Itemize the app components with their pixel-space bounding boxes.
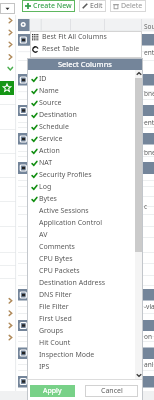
staticText: Bytes	[39, 194, 57, 204]
staticText: CPU Bytes	[39, 254, 73, 264]
button[interactable]: Source	[27, 97, 135, 109]
button[interactable]: Bytes	[27, 193, 135, 205]
button[interactable]: ID	[27, 73, 135, 85]
button[interactable]: Comments	[27, 241, 135, 253]
staticText: Apply	[43, 386, 62, 396]
staticText: Security Profiles	[39, 170, 92, 180]
button[interactable]: Edit	[79, 0, 106, 12]
button[interactable]: Action	[27, 145, 135, 157]
staticText: Edit	[90, 1, 103, 11]
staticText: Destination Address	[39, 278, 106, 288]
staticText: Cancel	[101, 386, 123, 396]
button[interactable]: DNS Filter	[27, 289, 135, 301]
staticText: Service	[39, 134, 63, 144]
staticText: Select Columns	[58, 59, 112, 69]
staticText: Groups	[39, 326, 64, 336]
other: Scroll down	[136, 372, 142, 378]
staticText: Source	[39, 98, 62, 108]
button[interactable]: Destination Address	[27, 277, 135, 289]
staticText: Active Sessions	[39, 206, 89, 216]
other: Scroll up	[136, 71, 142, 77]
staticText: bne	[144, 89, 154, 98]
button[interactable]: Service	[27, 133, 135, 145]
staticText: CPU Packets	[39, 266, 80, 276]
button[interactable]: Active Sessions	[27, 205, 135, 217]
button[interactable]: IPS	[27, 361, 135, 373]
button[interactable]: CPU Packets	[27, 265, 135, 277]
button[interactable]: Application Control	[27, 217, 135, 229]
staticText: Hit Count	[39, 338, 71, 348]
staticText: ent	[144, 48, 154, 57]
staticText: Name	[39, 86, 59, 96]
staticText: anl	[144, 360, 154, 369]
staticText: Create New	[33, 1, 72, 11]
button[interactable]: Log	[27, 181, 135, 193]
staticText: bne	[144, 148, 154, 157]
staticText: First Used	[39, 314, 72, 324]
button[interactable]: Apply	[30, 385, 75, 397]
button[interactable]: Schedule	[27, 121, 135, 133]
button[interactable]: File Filter	[27, 301, 135, 313]
staticText: Schedule	[39, 122, 69, 132]
button[interactable]: AV	[27, 229, 135, 241]
staticText: Log	[39, 182, 52, 192]
staticText: Best Fit All Columns	[42, 32, 107, 42]
button[interactable]: NAT	[27, 157, 135, 169]
staticText: Application Control	[39, 218, 102, 228]
staticText: Destination	[39, 110, 77, 120]
staticText: Reset Table	[42, 44, 80, 54]
button[interactable]: Security Profiles	[27, 169, 135, 181]
button[interactable]: Inspection Mode	[27, 349, 135, 361]
button[interactable]: Reset Table	[30, 43, 142, 55]
button[interactable]: Groups	[27, 325, 135, 337]
staticText: c	[144, 202, 148, 211]
button[interactable]: First Used	[27, 313, 135, 325]
button[interactable]: Cancel	[85, 385, 138, 397]
staticText: IPS	[39, 362, 50, 372]
staticText: NAT	[39, 158, 53, 168]
button[interactable]: Destination	[27, 109, 135, 121]
staticText: Sou	[144, 22, 154, 31]
button[interactable]: Best Fit All Columns	[30, 31, 142, 43]
button[interactable]: Create New	[22, 0, 75, 12]
button[interactable]: Name	[27, 85, 135, 97]
button[interactable]: CPU Bytes	[27, 253, 135, 265]
staticText: ent	[144, 118, 154, 127]
button[interactable]: Hit Count	[27, 337, 135, 349]
staticText: File Filter	[39, 302, 69, 312]
staticText: Comments	[39, 242, 75, 252]
staticText: Action	[39, 146, 60, 156]
button[interactable]: Delete	[110, 0, 146, 12]
staticText: Inspection Mode	[39, 350, 95, 360]
staticText: Delete	[121, 1, 143, 11]
staticText: AV	[39, 230, 48, 240]
staticText: on	[144, 332, 152, 341]
staticText: DNS Filter	[39, 290, 72, 300]
staticText: ID	[39, 74, 47, 84]
button[interactable]: Select policy type	[0, 3, 15, 14]
staticText: -vla	[144, 302, 154, 311]
